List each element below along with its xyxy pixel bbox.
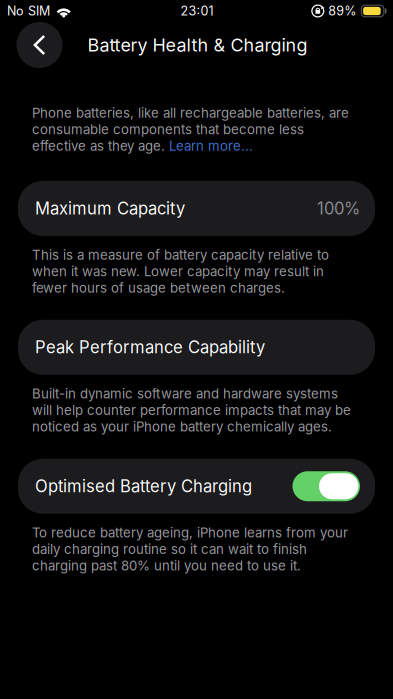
staticText: Phone batteries, like all rechargeable b…	[32, 105, 349, 154]
button[interactable]: Maximum Capacity	[0, 181, 393, 236]
staticText: To reduce battery ageing, iPhone learns …	[32, 525, 348, 574]
staticText: Optimised Battery Charging	[35, 476, 252, 496]
button[interactable]: Peak Performance Capability	[0, 320, 393, 375]
staticText: 23:01	[180, 3, 213, 19]
staticText: Maximum Capacity	[35, 198, 185, 218]
staticText: Built-in dynamic software and hardware s…	[32, 386, 351, 435]
staticText: 100%	[317, 198, 360, 218]
staticText: Battery Health & Charging	[87, 34, 307, 56]
button[interactable]: Optimised Battery Charging	[0, 459, 393, 514]
staticText: This is a measure of battery capacity re…	[32, 247, 329, 296]
staticText: No SIM	[7, 3, 50, 19]
staticText: Peak Performance Capability	[35, 337, 265, 357]
button[interactable]: Back	[16, 22, 62, 68]
staticText: 89%	[328, 3, 356, 19]
